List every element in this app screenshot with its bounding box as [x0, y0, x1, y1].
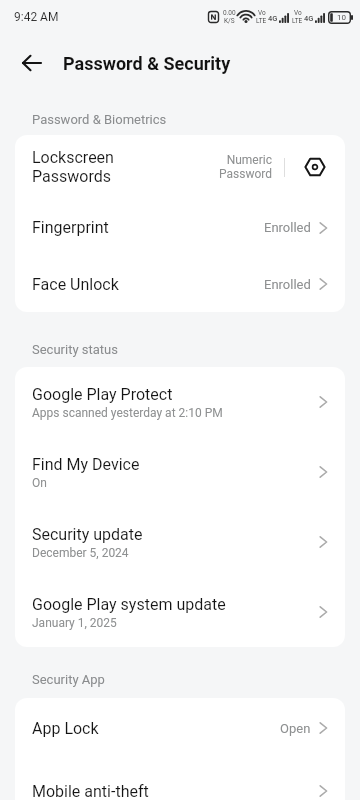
button[interactable]: Security update [15, 507, 345, 577]
button[interactable]: Find My Device [15, 437, 345, 507]
button[interactable]: Lockscreen Passwords [15, 135, 345, 199]
staticText: Apps scanned yesterday at 2:10 PM [32, 406, 223, 420]
button[interactable]: Google Play Protect [15, 367, 345, 437]
staticText: 4G [268, 14, 278, 23]
staticText: Vo [294, 9, 302, 17]
staticText: Security App [32, 672, 105, 687]
staticText: Find My Device [32, 455, 140, 474]
button[interactable]: Fingerprint [15, 199, 345, 256]
staticText: Enrolled [264, 220, 311, 235]
staticText: Password & Biometrics [32, 112, 167, 127]
button[interactable]: Face Unlock [15, 256, 345, 312]
staticText: Fingerprint [32, 218, 109, 237]
staticText: Enrolled [264, 277, 311, 292]
button[interactable] [12, 43, 52, 83]
staticText: Vo [258, 9, 266, 17]
staticText: K/S [224, 17, 235, 25]
staticText: 10 [337, 13, 346, 22]
staticText: Lockscreen Passwords [32, 148, 114, 186]
staticText: On [32, 476, 47, 490]
staticText: January 1, 2025 [32, 616, 117, 630]
button[interactable]: Google Play system update [15, 577, 345, 647]
staticText: Security status [32, 342, 118, 357]
button[interactable]: App Lock [15, 698, 345, 758]
staticText: 9:42 AM [14, 10, 59, 24]
staticText: Password & Security [63, 53, 231, 74]
staticText: LTE [292, 17, 303, 25]
staticText: Google Play Protect [32, 385, 173, 404]
staticText: Security update [32, 525, 143, 544]
staticText: 4G [304, 14, 314, 23]
button[interactable]: Mobile anti-theft [15, 758, 345, 800]
staticText: 0.00 [223, 9, 236, 17]
staticText: Face Unlock [32, 275, 119, 294]
staticText: App Lock [32, 719, 99, 738]
staticText: Mobile anti-theft [32, 782, 149, 800]
staticText: December 5, 2024 [32, 546, 129, 560]
staticText: Numeric Password [218, 153, 272, 181]
staticText: Open [280, 721, 311, 736]
staticText: Google Play system update [32, 595, 226, 614]
staticText: LTE [256, 17, 267, 25]
